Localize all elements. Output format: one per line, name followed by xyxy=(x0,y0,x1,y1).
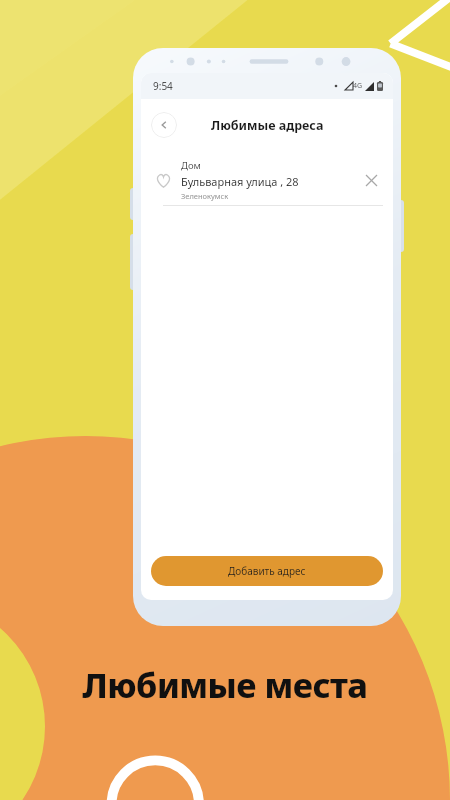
staticText: Зеленокумск xyxy=(181,191,229,201)
button[interactable]: Remove address xyxy=(359,168,383,192)
staticText: Любимые места xyxy=(0,662,450,708)
staticText: 4G xyxy=(353,81,363,91)
other: Favorite xyxy=(151,168,175,192)
button[interactable]: Back xyxy=(151,112,177,138)
staticText: 9:54 xyxy=(153,79,173,93)
button[interactable]: Добавить адрес xyxy=(151,556,383,586)
staticText: Любимые адреса xyxy=(211,117,324,134)
button[interactable]: Favorite xyxy=(141,155,393,205)
staticText: Дом xyxy=(181,159,201,172)
staticText: Добавить адрес xyxy=(228,564,306,578)
staticText: Бульварная улица , 28 xyxy=(181,174,299,189)
